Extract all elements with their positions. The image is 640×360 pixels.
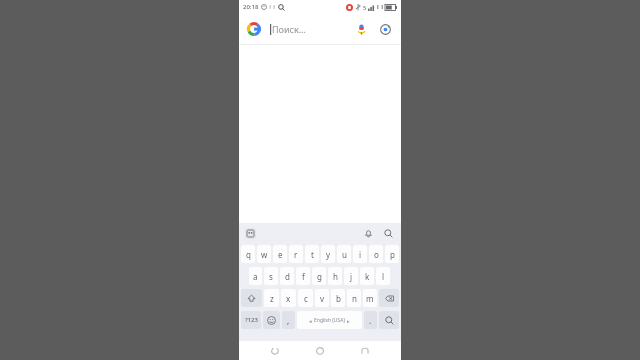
staticText: English (USA) bbox=[314, 317, 345, 324]
button[interactable]: l bbox=[376, 267, 390, 285]
button[interactable]: ?123 bbox=[241, 311, 261, 329]
staticText: 20:18 bbox=[243, 3, 259, 11]
staticText: d bbox=[285, 271, 290, 282]
button[interactable]: m bbox=[363, 289, 377, 307]
staticText: w bbox=[261, 249, 268, 260]
button[interactable]: Home bbox=[311, 342, 329, 360]
staticText: . bbox=[369, 315, 372, 326]
staticText: z bbox=[270, 293, 274, 304]
button[interactable]: Backspace bbox=[379, 289, 399, 307]
button[interactable]: Shift bbox=[241, 289, 262, 307]
button[interactable]: d bbox=[280, 267, 294, 285]
staticText: q bbox=[246, 249, 251, 260]
button[interactable]: k bbox=[360, 267, 374, 285]
staticText: o bbox=[374, 249, 379, 260]
staticText: v bbox=[320, 293, 325, 304]
button[interactable]: , bbox=[282, 311, 295, 329]
staticText: e bbox=[278, 249, 283, 260]
button[interactable]: Search bbox=[379, 311, 399, 329]
staticText: 5 bbox=[363, 4, 367, 11]
button[interactable]: f bbox=[296, 267, 310, 285]
button[interactable]: j bbox=[344, 267, 358, 285]
button[interactable]: Stickers bbox=[245, 228, 256, 239]
button[interactable]: Emoji bbox=[263, 311, 280, 329]
staticText: k bbox=[365, 271, 370, 282]
staticText: f bbox=[302, 271, 305, 282]
button[interactable]: e bbox=[273, 245, 287, 263]
button[interactable]: c bbox=[298, 289, 313, 307]
button[interactable]: Recents bbox=[356, 342, 374, 360]
staticText: x bbox=[286, 293, 291, 304]
staticText: r bbox=[294, 249, 298, 260]
staticText: g bbox=[317, 271, 322, 282]
staticText: j bbox=[350, 271, 353, 282]
staticText: t bbox=[311, 249, 314, 260]
button[interactable]: Search bbox=[381, 226, 395, 240]
button[interactable]: . bbox=[364, 311, 377, 329]
button[interactable]: Notifications bbox=[361, 226, 375, 240]
staticText: m bbox=[366, 293, 374, 304]
staticText: h bbox=[333, 271, 338, 282]
button[interactable]: o bbox=[369, 245, 383, 263]
button[interactable]: ◂ bbox=[297, 311, 362, 329]
button[interactable]: Google Lens bbox=[377, 21, 393, 37]
button[interactable]: Back bbox=[266, 342, 284, 360]
staticText: b bbox=[336, 293, 341, 304]
button[interactable]: p bbox=[385, 245, 399, 263]
button[interactable]: u bbox=[337, 245, 351, 263]
staticText: c bbox=[304, 293, 308, 304]
staticText: p bbox=[390, 249, 395, 260]
button[interactable]: v bbox=[315, 289, 329, 307]
staticText: i bbox=[359, 249, 362, 260]
staticText: ▸ bbox=[347, 318, 350, 324]
button[interactable]: a bbox=[249, 267, 262, 285]
staticText: ◂ bbox=[309, 318, 312, 324]
button[interactable]: s bbox=[264, 267, 278, 285]
staticText: s bbox=[269, 271, 273, 282]
button[interactable]: h bbox=[328, 267, 342, 285]
button[interactable]: i bbox=[353, 245, 367, 263]
button[interactable]: Поиск… bbox=[239, 14, 401, 44]
button[interactable]: t bbox=[305, 245, 319, 263]
staticText: l bbox=[382, 271, 385, 282]
button[interactable]: Voice search bbox=[353, 21, 369, 37]
staticText: , bbox=[287, 315, 290, 326]
staticText: n bbox=[352, 293, 357, 304]
button[interactable]: x bbox=[281, 289, 296, 307]
staticText: a bbox=[253, 271, 258, 282]
staticText: u bbox=[342, 249, 347, 260]
button[interactable]: z bbox=[264, 289, 279, 307]
button[interactable]: w bbox=[257, 245, 271, 263]
button[interactable]: y bbox=[321, 245, 335, 263]
button[interactable]: b bbox=[331, 289, 345, 307]
button[interactable]: q bbox=[241, 245, 255, 263]
staticText: Поиск… bbox=[272, 23, 306, 35]
button[interactable]: r bbox=[289, 245, 303, 263]
button[interactable]: g bbox=[312, 267, 326, 285]
staticText: y bbox=[326, 249, 331, 260]
staticText: ?123 bbox=[245, 316, 258, 324]
button[interactable]: n bbox=[347, 289, 361, 307]
